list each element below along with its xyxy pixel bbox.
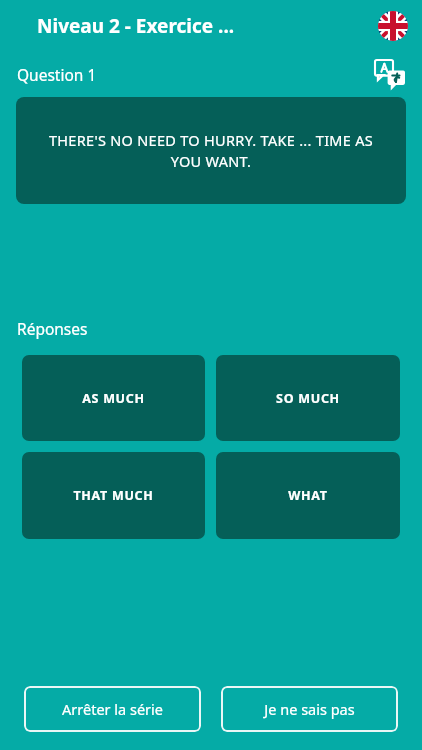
button[interactable]: Change language — [378, 11, 408, 41]
button[interactable]: SO MUCH — [216, 355, 400, 441]
button[interactable]: AS MUCH — [22, 355, 205, 441]
staticText: THAT MUCH — [73, 487, 154, 504]
staticText: Je ne sais pas — [264, 699, 355, 719]
staticText: Arrêter la série — [62, 699, 163, 719]
staticText: THERE'S NO NEED TO HURRY. TAKE ... TIME … — [36, 130, 386, 172]
staticText: Niveau 2 - Exercice ... — [37, 13, 235, 39]
button[interactable]: Je ne sais pas — [221, 686, 398, 732]
staticText: WHAT — [288, 487, 328, 504]
button[interactable]: Translate — [374, 59, 406, 91]
staticText: Question 1 — [17, 64, 97, 85]
button[interactable]: WHAT — [216, 452, 400, 539]
button[interactable]: THAT MUCH — [22, 452, 205, 539]
staticText: Réponses — [17, 318, 88, 339]
staticText: SO MUCH — [276, 390, 340, 407]
staticText: AS MUCH — [82, 390, 145, 407]
button[interactable]: THERE'S NO NEED TO HURRY. TAKE ... TIME … — [16, 97, 406, 204]
button[interactable]: Arrêter la série — [24, 686, 201, 732]
